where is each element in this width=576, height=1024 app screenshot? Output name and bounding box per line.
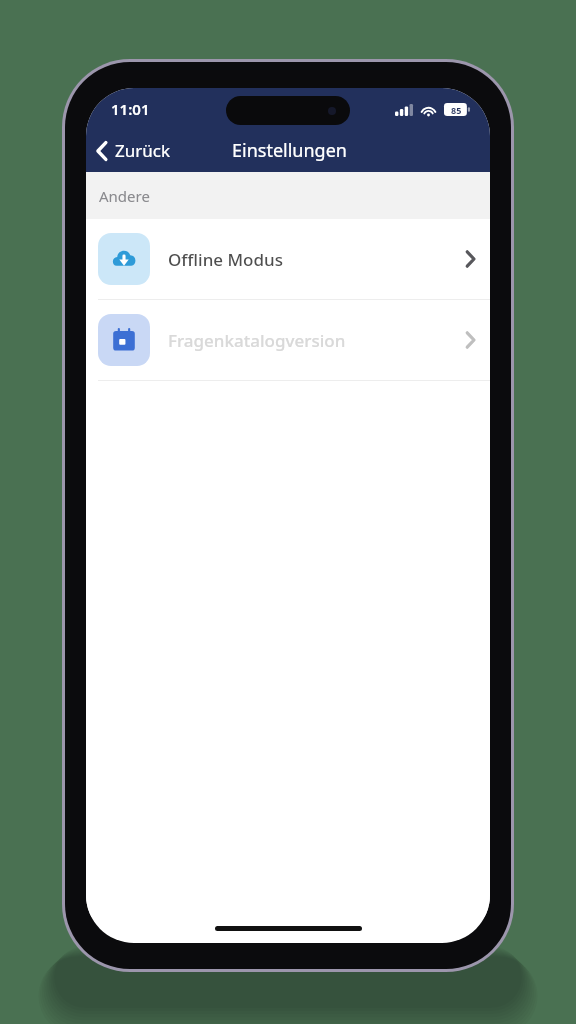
button[interactable]: Offline Modus	[86, 219, 490, 299]
staticText: Einstellungen	[232, 138, 347, 163]
staticText: 85	[451, 104, 462, 116]
staticText: 11:01	[111, 99, 150, 119]
staticText: Zurück	[115, 139, 170, 162]
staticText: Offline Modus	[168, 248, 465, 271]
button[interactable]: Fragenkatalogversion	[86, 300, 490, 380]
staticText: Fragenkatalogversion	[168, 329, 465, 352]
button[interactable]: Zurück	[86, 135, 180, 166]
staticText: Andere	[99, 186, 150, 206]
